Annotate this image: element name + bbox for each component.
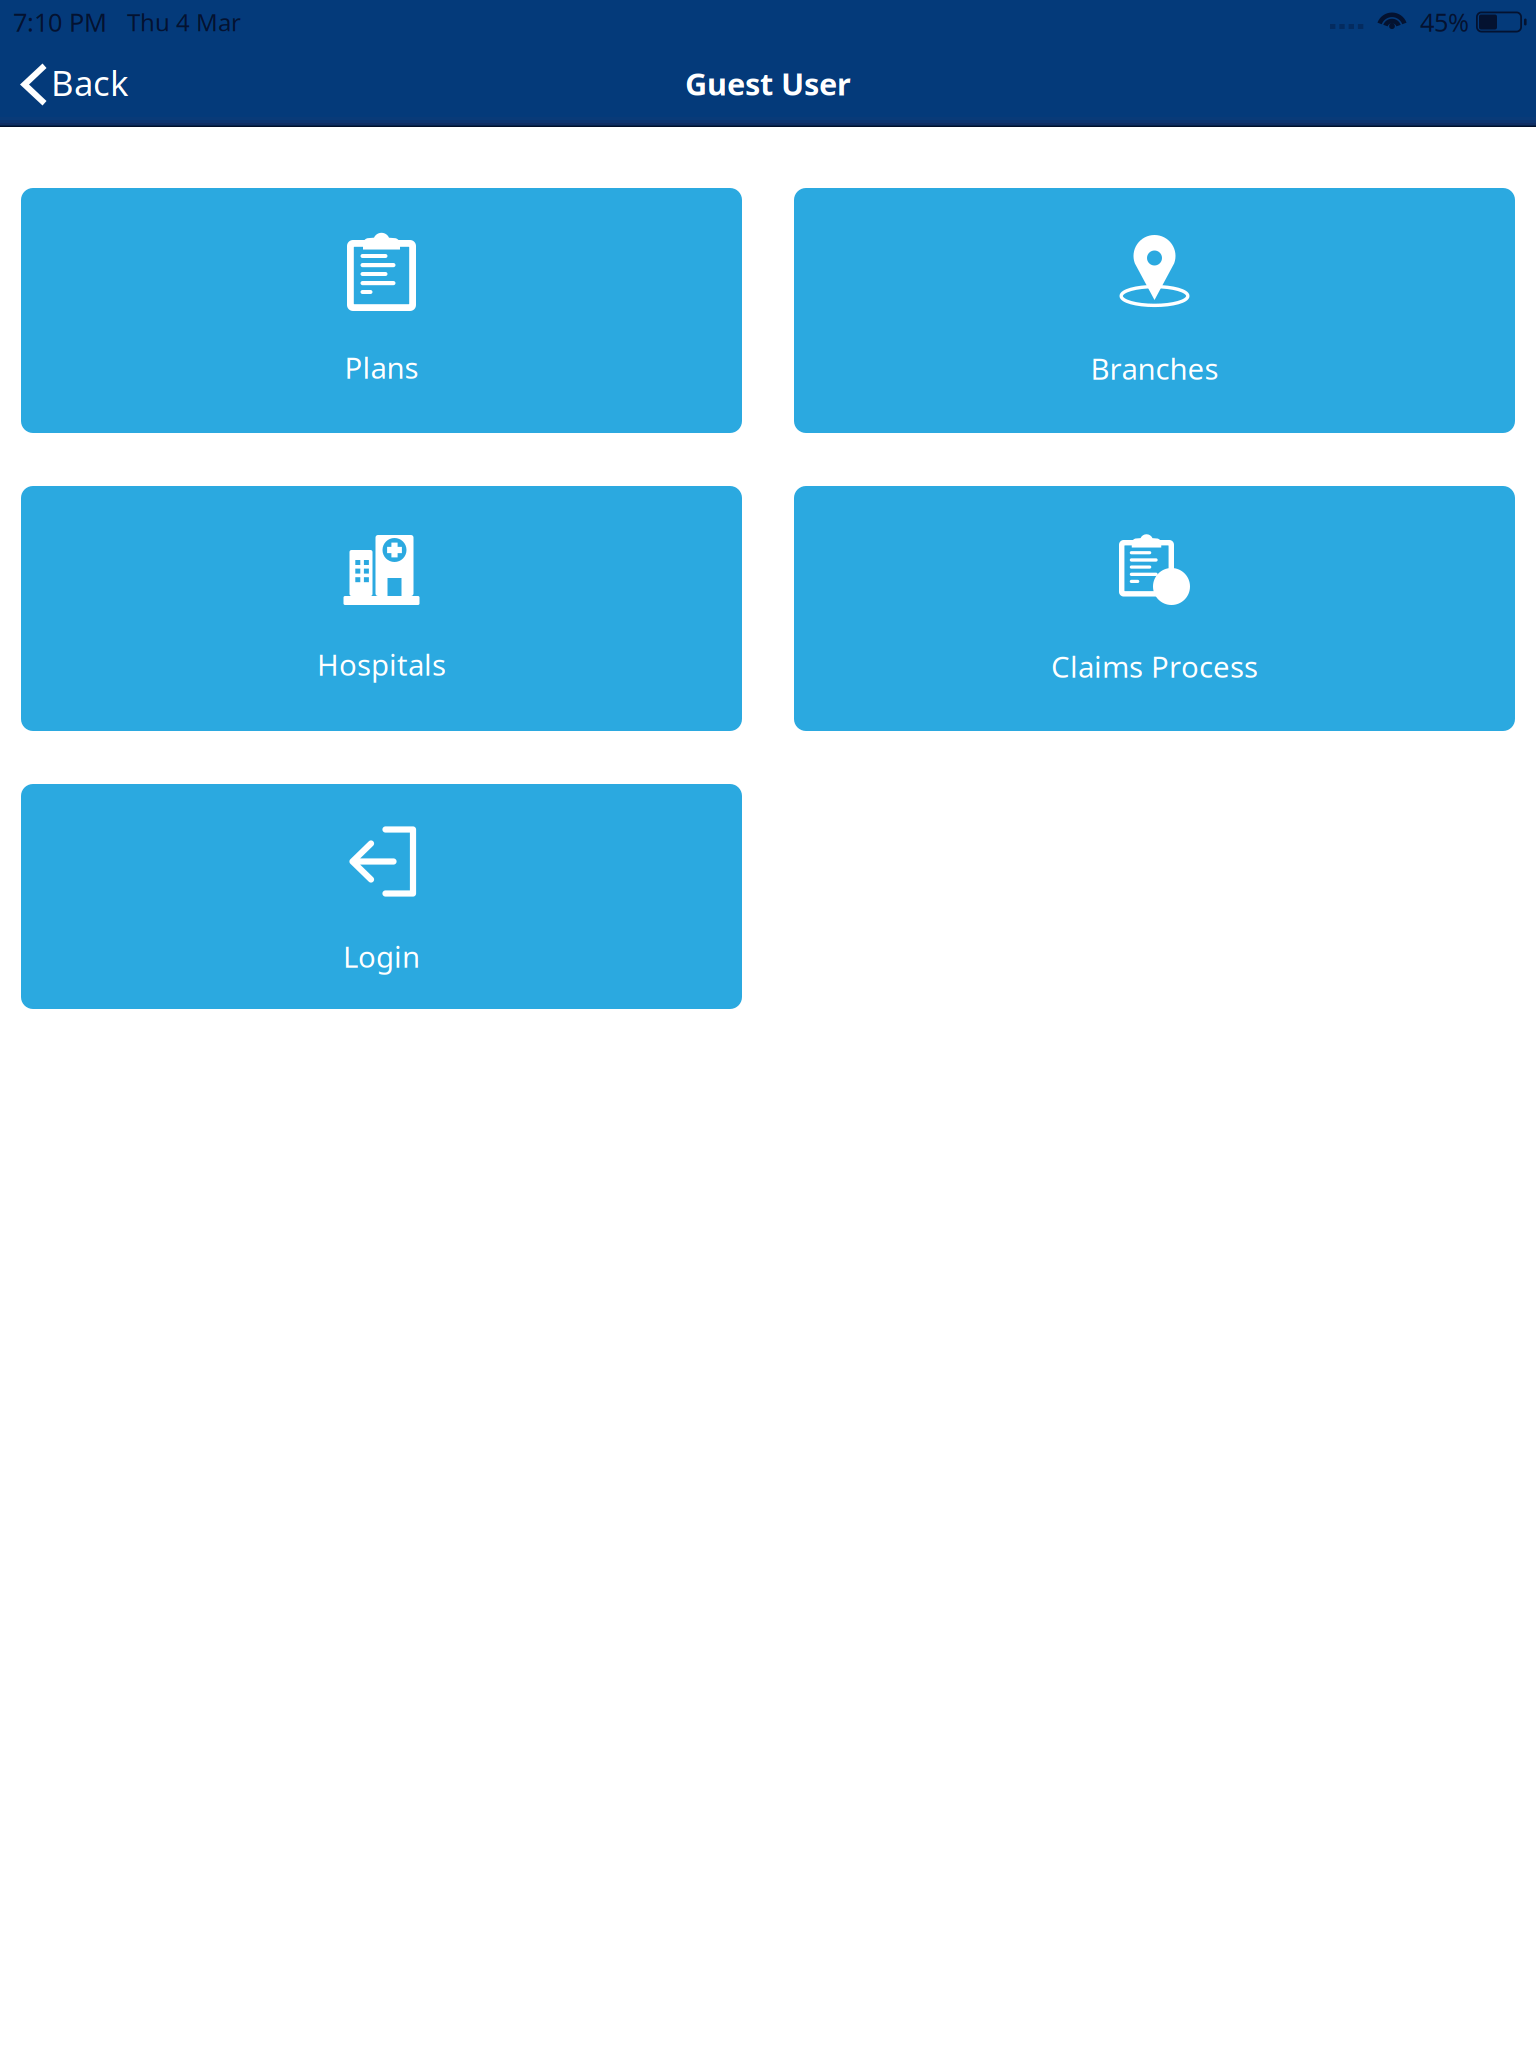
button[interactable]: Hospitals (21, 486, 742, 731)
button[interactable]: Branches (794, 188, 1515, 433)
staticText: Thu 4 Mar (127, 6, 241, 38)
staticText: Login (343, 937, 420, 976)
staticText: Back (51, 59, 129, 105)
staticText: Hospitals (317, 645, 446, 684)
staticText: 45% (1420, 5, 1469, 39)
staticText: Branches (1090, 349, 1218, 388)
staticText: Guest User (685, 63, 851, 104)
staticText: Plans (344, 348, 418, 387)
button[interactable]: Back (0, 39, 153, 121)
button[interactable]: Claims Process (794, 486, 1515, 731)
staticText: Claims Process (1051, 647, 1258, 686)
staticText: 7:10 PM (13, 5, 107, 39)
button[interactable]: Plans (21, 188, 742, 433)
button[interactable]: Login (21, 784, 742, 1009)
